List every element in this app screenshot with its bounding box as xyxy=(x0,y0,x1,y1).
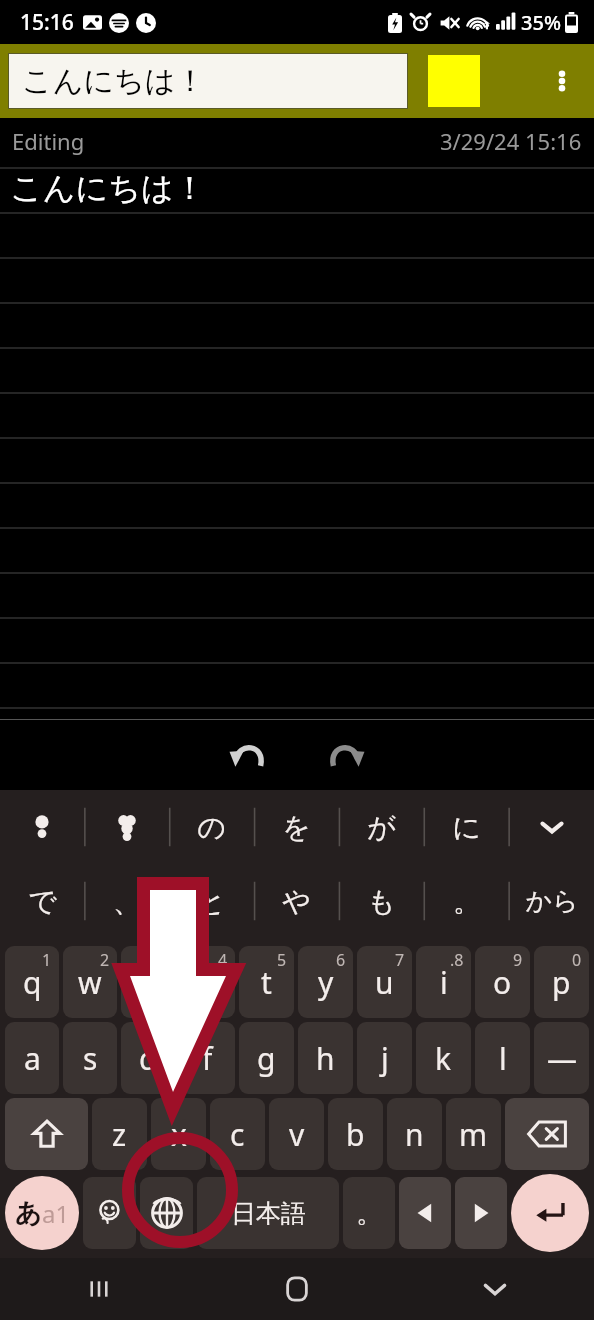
staticText: 9 xyxy=(513,949,523,971)
button[interactable]: 、 xyxy=(84,864,169,938)
staticText: d xyxy=(139,1038,158,1079)
staticText: b xyxy=(346,1114,365,1155)
button[interactable]: s xyxy=(63,1022,117,1094)
staticText: 7 xyxy=(395,949,405,971)
staticText: 3/29/24 15:16 xyxy=(440,126,582,156)
button[interactable]: Change keyboard language xyxy=(140,1177,193,1249)
staticText: と xyxy=(197,884,226,919)
staticText: 0 xyxy=(572,949,582,971)
staticText: や xyxy=(282,884,311,919)
button[interactable]: に xyxy=(424,790,509,864)
staticText: n xyxy=(405,1114,424,1155)
button[interactable]: e xyxy=(121,946,176,1018)
button[interactable] xyxy=(509,790,594,864)
button[interactable]: x xyxy=(151,1098,206,1170)
staticText: j xyxy=(381,1038,389,1079)
button[interactable]: Editing xyxy=(0,118,594,719)
staticText: 1 xyxy=(42,949,52,971)
button[interactable]: Enter xyxy=(511,1174,589,1252)
button[interactable]: o xyxy=(475,946,530,1018)
staticText: 15:16 xyxy=(20,8,74,37)
button[interactable]: Undo xyxy=(216,723,280,787)
staticText: c xyxy=(230,1114,245,1155)
button[interactable]: a xyxy=(5,1022,59,1094)
staticText: 35% xyxy=(521,9,561,36)
staticText: で xyxy=(28,884,57,919)
button[interactable] xyxy=(84,790,169,864)
staticText: を xyxy=(282,810,311,845)
staticText: — xyxy=(547,1038,577,1079)
staticText: y xyxy=(318,962,334,1003)
staticText: l xyxy=(499,1038,507,1079)
staticText: p xyxy=(552,962,571,1003)
button[interactable]: u xyxy=(357,946,412,1018)
staticText: に xyxy=(452,810,481,845)
staticText: s xyxy=(83,1038,98,1079)
button[interactable]: Shift xyxy=(5,1098,88,1170)
staticText: i xyxy=(440,962,448,1003)
button[interactable]: Change input mode xyxy=(5,1176,79,1250)
button[interactable]: m xyxy=(446,1098,501,1170)
button[interactable]: や xyxy=(254,864,339,938)
button[interactable]: も xyxy=(339,864,424,938)
button[interactable]: More options xyxy=(538,57,586,105)
staticText: o xyxy=(493,962,512,1003)
button[interactable]: y xyxy=(298,946,353,1018)
staticText: a xyxy=(24,1038,41,1079)
button[interactable]: v xyxy=(269,1098,324,1170)
button[interactable]: を xyxy=(254,790,339,864)
button[interactable]: Backspace xyxy=(505,1098,589,1170)
button[interactable]: — xyxy=(534,1022,589,1094)
staticText: から xyxy=(525,885,579,918)
button[interactable]: k xyxy=(416,1022,471,1094)
staticText: .8 xyxy=(450,949,464,971)
button[interactable]: が xyxy=(339,790,424,864)
button[interactable]: d xyxy=(121,1022,176,1094)
button[interactable]: Home xyxy=(198,1258,396,1320)
button[interactable]: f xyxy=(180,1022,235,1094)
button[interactable]: 。 xyxy=(343,1177,395,1249)
staticText: g xyxy=(257,1038,276,1079)
button[interactable]: 日本語 xyxy=(197,1177,339,1249)
button[interactable]: Hide keyboard xyxy=(396,1258,594,1320)
button[interactable]: i xyxy=(416,946,471,1018)
button[interactable]: h xyxy=(298,1022,353,1094)
button[interactable]: j xyxy=(357,1022,412,1094)
button[interactable]: Move cursor right xyxy=(455,1177,507,1249)
staticText: h xyxy=(316,1038,335,1079)
button[interactable]: p xyxy=(534,946,589,1018)
button[interactable]: と xyxy=(169,864,254,938)
button[interactable]: l xyxy=(475,1022,530,1094)
staticText: Editing xyxy=(12,126,85,156)
staticText: u xyxy=(375,962,394,1003)
button[interactable] xyxy=(0,790,84,864)
staticText: の xyxy=(197,810,226,845)
staticText: a1 xyxy=(42,1197,70,1230)
button[interactable]: Emoji xyxy=(83,1177,136,1249)
staticText: w xyxy=(78,962,102,1003)
button[interactable]: Recents xyxy=(0,1258,198,1320)
staticText: q xyxy=(23,962,42,1003)
button[interactable]: こんにちは！ xyxy=(8,53,408,109)
button[interactable]: w xyxy=(63,946,117,1018)
staticText: 2 xyxy=(100,949,110,971)
button[interactable]: r xyxy=(180,946,235,1018)
button[interactable]: n xyxy=(387,1098,442,1170)
button[interactable]: Redo xyxy=(314,723,378,787)
button[interactable]: q xyxy=(5,946,59,1018)
button[interactable]: t xyxy=(239,946,294,1018)
button[interactable]: 。 xyxy=(424,864,509,938)
button[interactable]: b xyxy=(328,1098,383,1170)
button[interactable]: g xyxy=(239,1022,294,1094)
button[interactable]: の xyxy=(169,790,254,864)
staticText: 4 xyxy=(218,949,228,971)
button[interactable]: z xyxy=(92,1098,147,1170)
button[interactable]: で xyxy=(0,864,84,938)
staticText: こんにちは！ xyxy=(10,168,206,208)
button[interactable]: Move cursor left xyxy=(399,1177,451,1249)
button[interactable]: c xyxy=(210,1098,265,1170)
staticText: k xyxy=(435,1038,452,1079)
button[interactable]: から xyxy=(509,864,594,938)
staticText: z xyxy=(112,1114,127,1155)
